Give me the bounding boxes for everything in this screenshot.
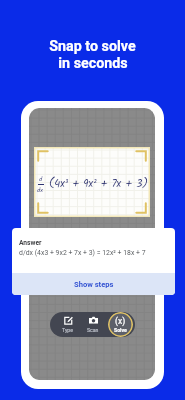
- staticText: Show steps: [74, 280, 114, 289]
- staticText: (4x³ + 9x² + 7x + 3): [49, 176, 148, 193]
- button[interactable]: Solve: [108, 312, 133, 337]
- button[interactable]: Show steps: [12, 273, 175, 295]
- staticText: Scan: [87, 327, 99, 333]
- staticText: Answer: [19, 239, 42, 247]
- staticText: dx: [37, 185, 44, 195]
- staticText: Type: [62, 327, 74, 333]
- staticText: Solve: [114, 327, 127, 333]
- staticText: (x): [115, 316, 126, 326]
- staticText: Snap to solve: [49, 38, 136, 55]
- button[interactable]: Scan: [79, 312, 107, 337]
- staticText: in seconds: [58, 55, 128, 72]
- staticText: d/dx (4x3 + 9x2 + 7x + 3) = 12x² + 18x +…: [19, 249, 146, 257]
- button[interactable]: Type: [54, 312, 82, 337]
- staticText: d: [39, 174, 43, 184]
